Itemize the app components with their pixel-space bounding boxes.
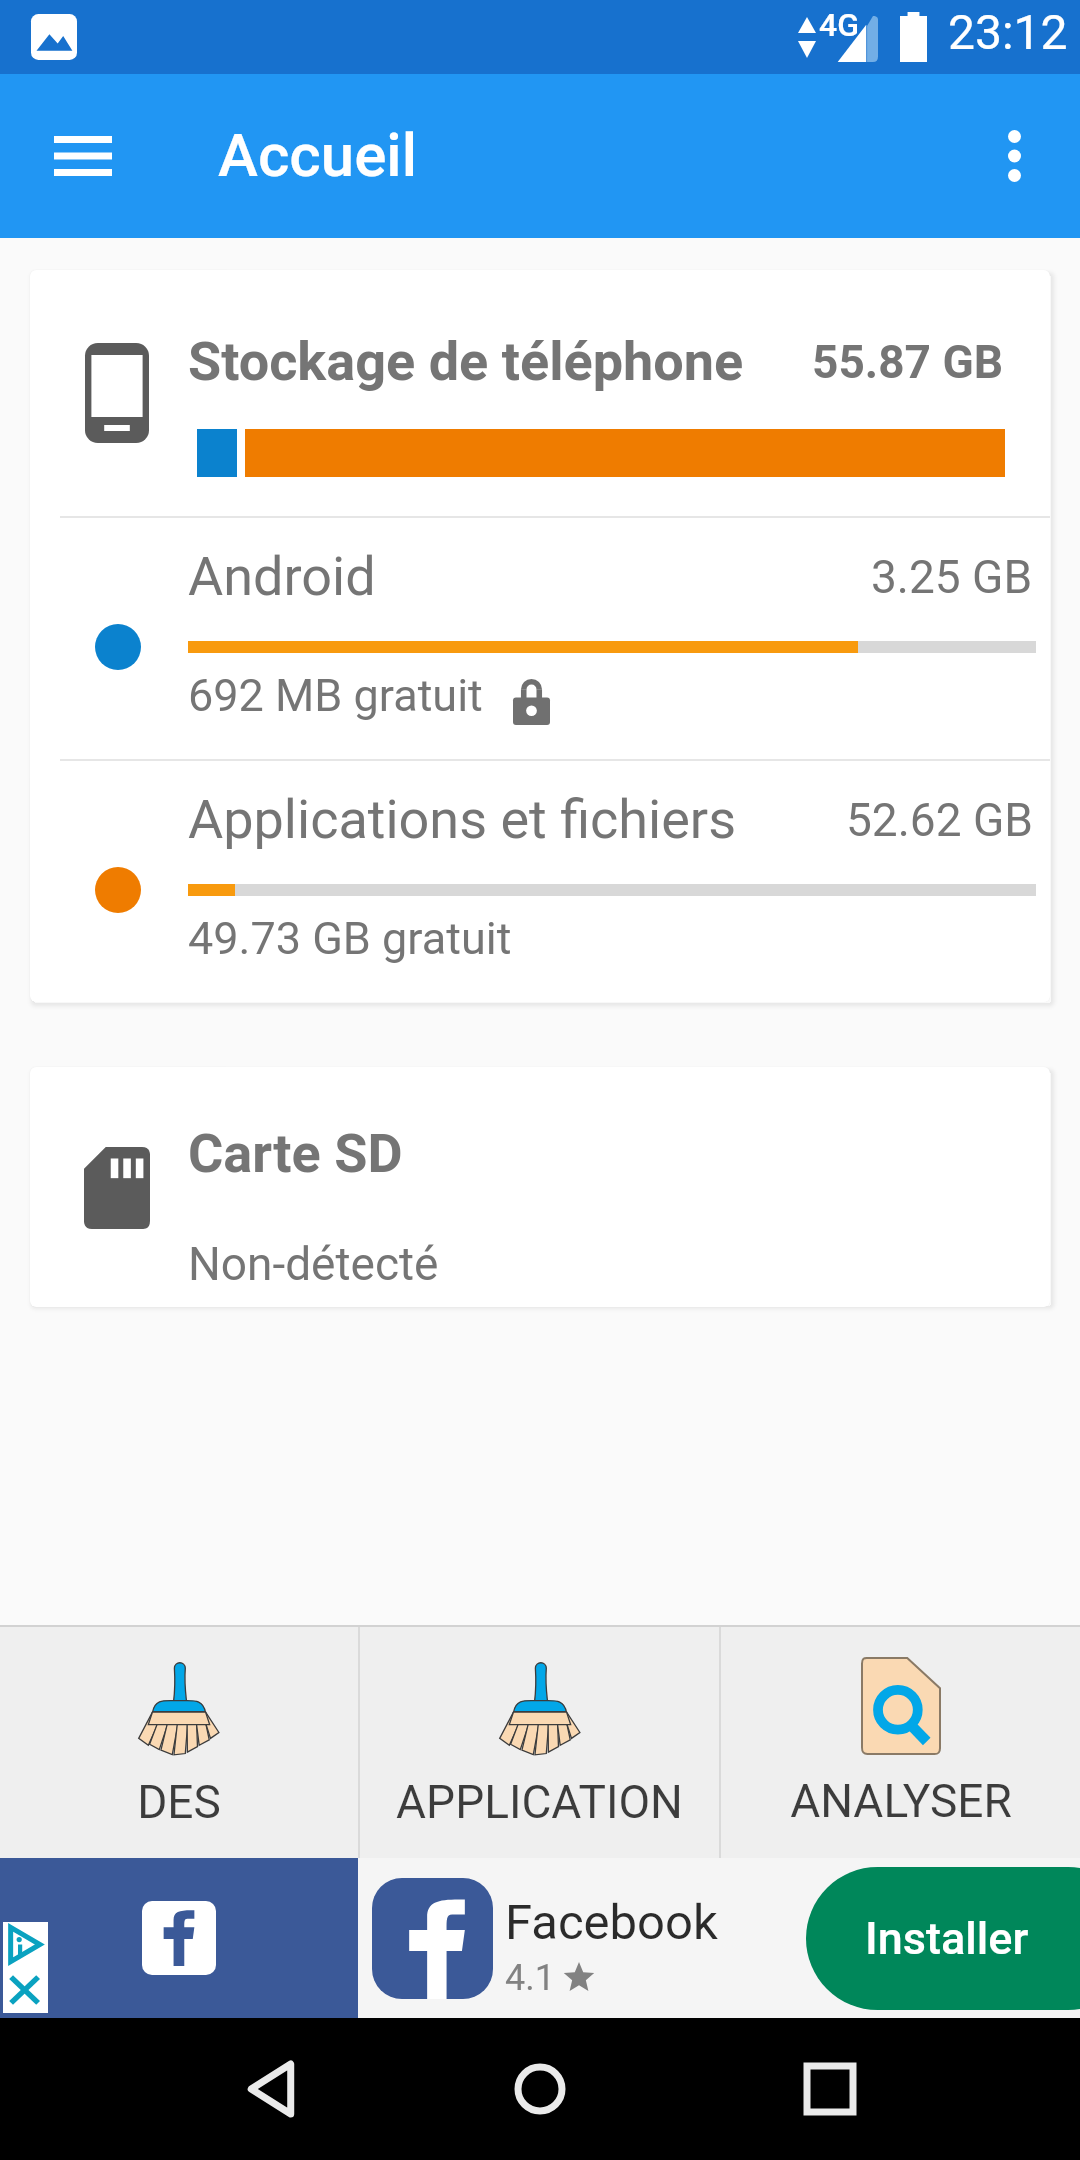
staticText: 4G	[819, 6, 859, 44]
staticText: 692 MB gratuit	[188, 669, 483, 722]
staticText: 23:12	[948, 4, 1068, 60]
staticText: Carte SD	[188, 1122, 403, 1185]
staticText: 3.25 GB	[871, 550, 1033, 604]
staticText: 4.1	[505, 1957, 555, 1999]
staticText: DES	[137, 1775, 221, 1829]
button[interactable]: DES	[0, 1627, 358, 1858]
staticText: Non-détecté	[188, 1237, 439, 1291]
staticText: Applications et fichiers	[188, 788, 737, 851]
staticText: Android	[188, 545, 376, 608]
button[interactable]: Stockage de téléphone	[30, 270, 1050, 516]
button[interactable]: Home	[500, 2049, 580, 2129]
button[interactable]: Android	[30, 518, 1050, 759]
staticText: 55.87 GB	[812, 335, 1004, 389]
button[interactable]: APPLICATION	[360, 1627, 719, 1858]
button[interactable]: More options	[974, 116, 1054, 196]
staticText: 52.62 GB	[846, 793, 1033, 847]
button[interactable]: Recents	[790, 2049, 870, 2129]
button[interactable]: Menu	[43, 116, 123, 196]
button[interactable]: Installer	[806, 1867, 1080, 2010]
button[interactable]: Applications et fichiers	[30, 761, 1050, 1002]
staticText: Installer	[865, 1912, 1029, 1965]
staticText: 49.73 GB gratuit	[188, 912, 512, 965]
staticText: ANALYSER	[790, 1774, 1012, 1828]
button[interactable]: Back	[210, 2049, 290, 2129]
button[interactable]: Carte SD	[30, 1067, 1050, 1307]
button[interactable]: ANALYSER	[721, 1627, 1080, 1858]
staticText: Facebook	[505, 1894, 718, 1951]
staticText: APPLICATION	[396, 1775, 683, 1829]
staticText: Stockage de téléphone	[188, 330, 744, 393]
staticText: Accueil	[218, 120, 418, 190]
